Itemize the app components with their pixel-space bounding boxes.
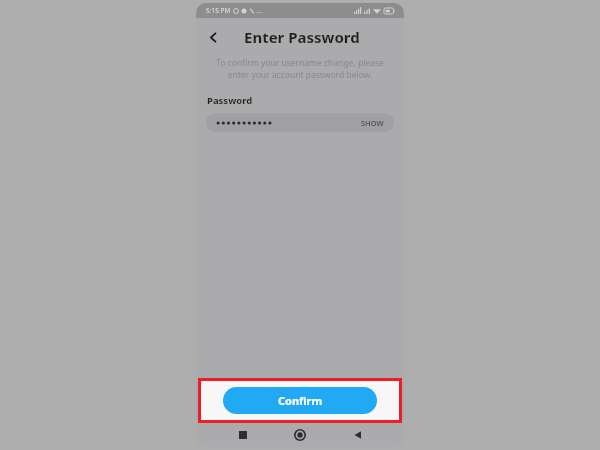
staticText: Password: [207, 94, 253, 107]
button[interactable]: Confirm: [223, 387, 377, 414]
button[interactable]: Back: [347, 424, 369, 446]
staticText: SHOW: [361, 118, 384, 128]
staticText: To confirm your username change, please …: [208, 57, 392, 81]
staticText: ...: [257, 6, 263, 15]
button[interactable]: Recent apps: [232, 424, 254, 446]
button[interactable]: Home: [289, 424, 311, 446]
button[interactable]: SHOW: [206, 113, 394, 132]
staticText: Confirm: [278, 393, 323, 408]
staticText: 5:15 PM: [206, 6, 231, 15]
staticText: Enter Password: [244, 27, 360, 47]
button[interactable]: Back: [202, 26, 224, 48]
